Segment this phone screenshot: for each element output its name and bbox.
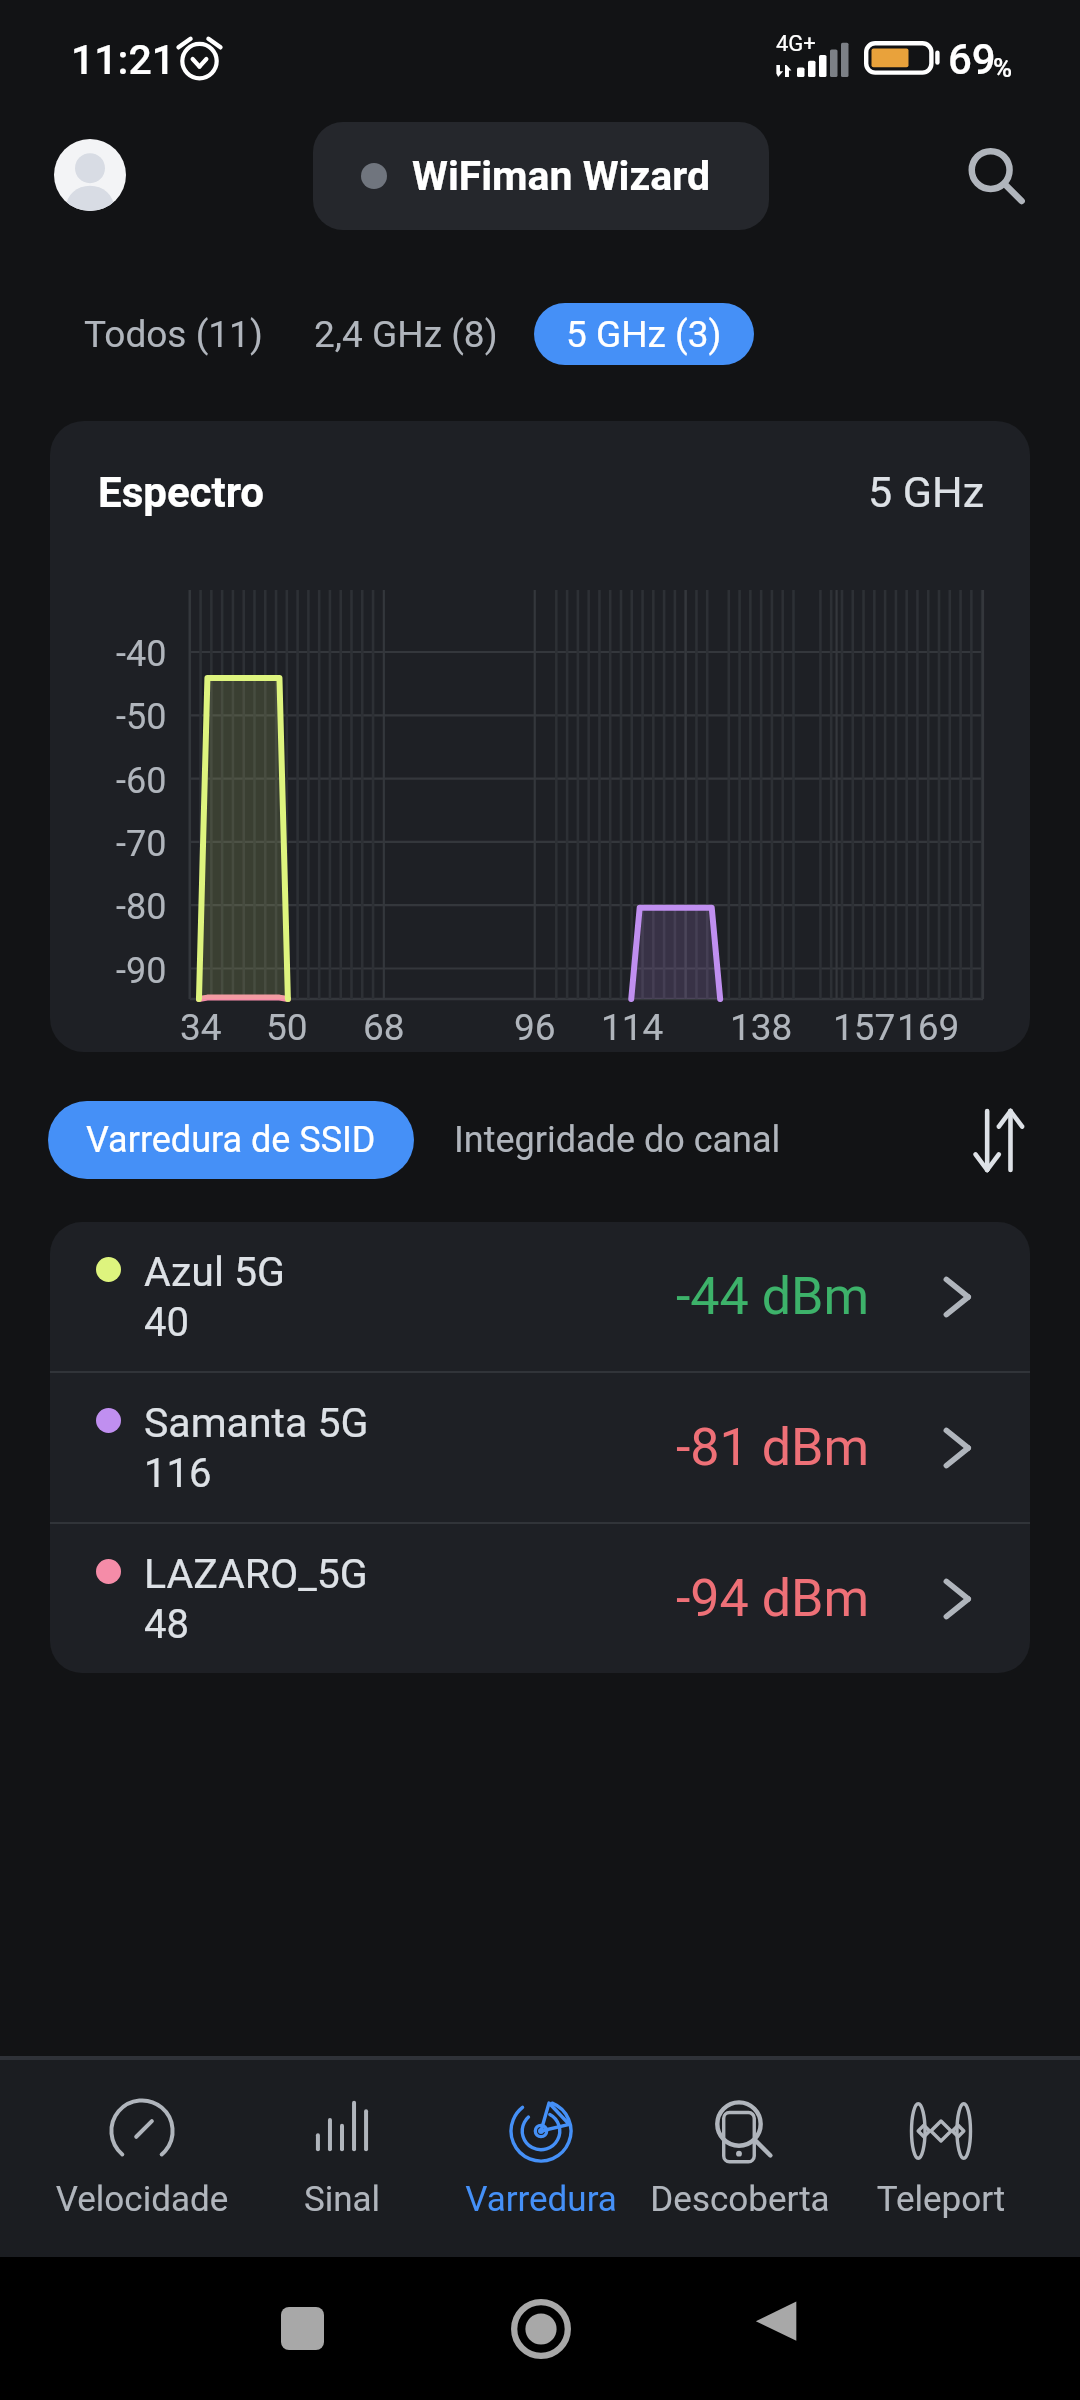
button[interactable]: Profile [54,139,126,211]
staticText: 2,4 GHz (8) [314,313,498,356]
staticText: Todos (11) [84,313,263,356]
button[interactable]: Varredura [441,2060,641,2257]
staticText: -70 [116,823,167,865]
staticText: 4G+ [776,31,816,57]
staticText: -60 [116,760,167,802]
staticText: LAZARO_5G [144,1550,368,1598]
staticText: -40 [116,633,167,675]
staticText: Azul 5G [144,1248,286,1296]
button[interactable]: Descoberta [640,2060,840,2257]
button[interactable]: Back [754,2297,800,2343]
button[interactable]: Home [511,2299,571,2359]
staticText: Samanta 5G [144,1399,369,1447]
staticText: -44 dBm [676,1266,870,1327]
button[interactable]: Velocidade [42,2060,242,2257]
button[interactable]: Search [950,130,1040,220]
button[interactable]: Sort [954,1101,1040,1179]
button[interactable]: Recents [281,2307,324,2350]
staticText: 34 [180,1006,222,1049]
staticText: Varredura de SSID [86,1119,376,1161]
staticText: 5 GHz [868,467,985,517]
staticText: 169 [897,1006,960,1049]
staticText: 68 [363,1006,405,1049]
staticText: 50 [266,1006,308,1049]
button[interactable]: Sinal [242,2060,442,2257]
staticText: -90 [116,950,167,992]
staticText: Velocidade [42,2179,242,2220]
button[interactable]: Azul 5G [50,1222,1030,1371]
staticText: 69 [948,35,996,84]
staticText: 40 [144,1299,189,1346]
staticText: 157 [833,1006,896,1049]
staticText: -94 dBm [676,1568,870,1629]
staticText: Integridade do canal [454,1119,781,1161]
button[interactable]: 5 GHz (3) [534,303,754,365]
staticText: 114 [601,1006,664,1049]
staticText: 11:21 [71,36,176,84]
staticText: Sinal [242,2179,442,2220]
staticText: 48 [144,1601,189,1648]
button[interactable]: Samanta 5G [50,1373,1030,1522]
staticText: 96 [514,1006,556,1049]
staticText: -50 [116,696,167,738]
staticText: -80 [116,886,167,928]
button[interactable]: WiFiman Wizard [313,122,769,230]
button[interactable]: LAZARO_5G [50,1524,1030,1673]
staticText: WiFiman Wizard [412,152,711,200]
staticText: 138 [730,1006,793,1049]
button[interactable]: 2,4 GHz (8) [298,303,514,365]
button[interactable]: Varredura de SSID [48,1101,414,1179]
staticText: 116 [144,1450,212,1497]
button[interactable]: Integridade do canal [424,1101,811,1179]
staticText: 5 GHz (3) [566,313,722,356]
staticText: % [993,53,1013,83]
button[interactable]: Teleport [841,2060,1041,2257]
staticText: -81 dBm [676,1417,870,1478]
staticText: Descoberta [640,2179,840,2220]
staticText: Varredura [441,2179,641,2220]
staticText: Espectro [98,468,265,517]
button[interactable]: Todos (11) [66,303,281,365]
staticText: Teleport [841,2179,1041,2220]
